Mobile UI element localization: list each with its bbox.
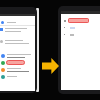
button[interactable] (0, 59, 35, 66)
other: Next (42, 58, 59, 74)
button[interactable] (61, 34, 100, 36)
button[interactable] (0, 40, 35, 44)
button[interactable] (0, 66, 35, 73)
button[interactable] (61, 18, 100, 23)
button[interactable] (0, 52, 35, 59)
button[interactable] (0, 73, 35, 80)
button[interactable] (0, 28, 35, 32)
button[interactable] (61, 27, 100, 29)
button[interactable] (0, 19, 35, 25)
